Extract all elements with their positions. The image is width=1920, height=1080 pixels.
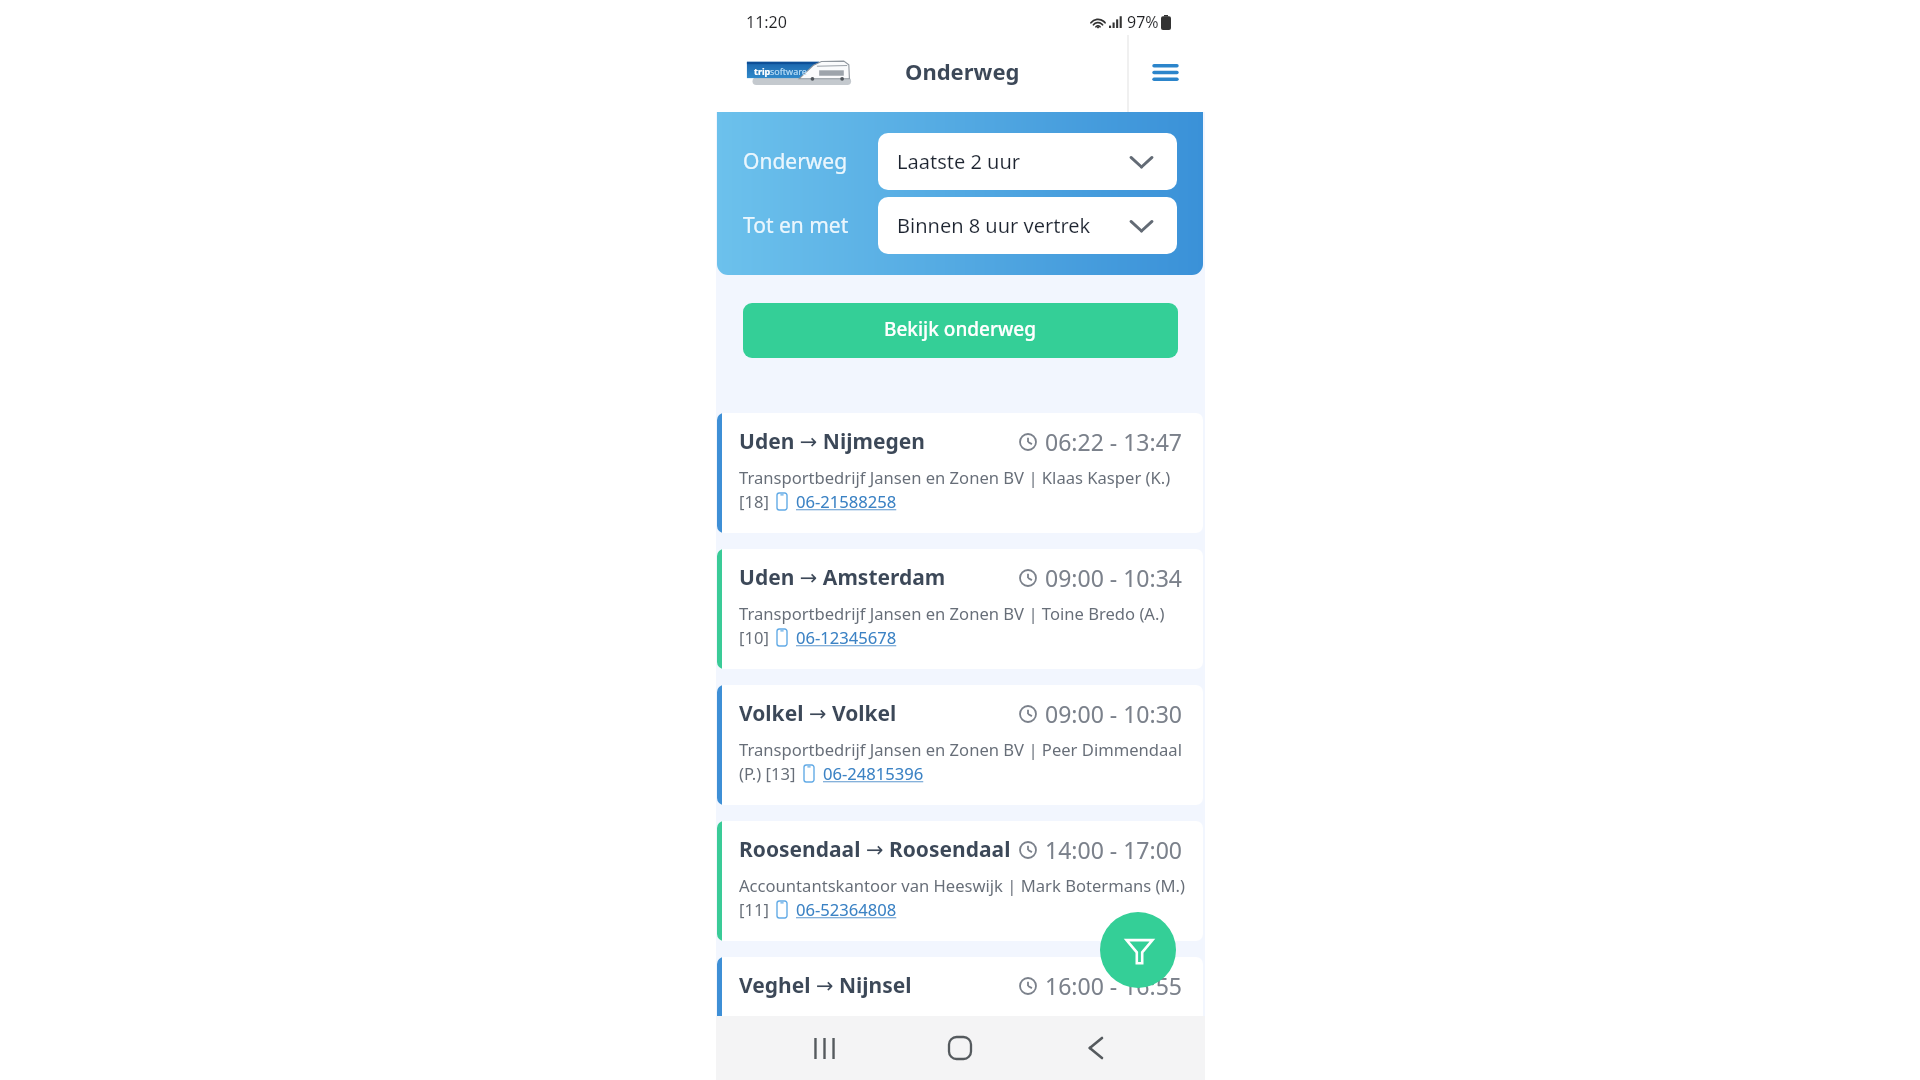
staticText: Veghel → Nijnsel [739,971,912,1000]
button[interactable]: Veghel → Nijnsel [717,957,1203,1077]
staticText: [10] [739,626,769,649]
button[interactable]: Roosendaal → Roosendaal [717,821,1203,941]
staticText: Onderweg [905,56,1020,86]
button[interactable]: Laatste 2 uur [878,133,1177,190]
staticText: software [770,65,807,77]
staticText: [11] [739,898,769,921]
staticText: Onderweg [743,147,848,176]
staticText: (P.) [13] [739,762,796,785]
staticText: Binnen 8 uur vertrek [897,212,1091,239]
staticText: Tot en met [743,211,849,240]
staticText: Transportbedrijf Jansen en Zonen BV | Pe… [739,738,1199,761]
staticText: 06-12345678 [796,626,897,649]
button[interactable]: Uden → Amsterdam [717,549,1203,669]
staticText: 06-24815396 [823,762,924,785]
staticText: 16:00 - 16:55 [1045,970,1182,1001]
staticText: Transportbedrijf Jansen en Zonen BV | To… [739,602,1199,625]
button[interactable]: Uden → Nijmegen [717,413,1203,533]
button[interactable]: Binnen 8 uur vertrek [878,197,1177,254]
staticText: Accountantskantoor van Heeswijk | Mark B… [739,874,1199,897]
staticText: Bekijk onderweg [884,316,1037,342]
staticText: Laatste 2 uur [897,148,1021,175]
button[interactable]: Bekijk onderweg [743,303,1178,358]
staticText: trip [754,65,771,77]
staticText: Transportbedrijf Jansen en Zonen BV | Kl… [739,466,1199,489]
staticText: 09:00 - 10:30 [1045,698,1182,729]
staticText: Roosendaal → Roosendaal [739,835,1011,864]
staticText: Uden → Nijmegen [739,427,925,456]
button[interactable]: Home [936,1024,984,1072]
staticText: 06-21588258 [796,490,897,513]
staticText: [18] [739,490,769,513]
staticText: 14:00 - 17:00 [1045,834,1182,865]
button[interactable]: 06-12345678 [777,626,897,649]
staticText: Volkel → Volkel [739,699,897,728]
button[interactable]: 06-21588258 [777,490,897,513]
button[interactable]: Volkel → Volkel [717,685,1203,805]
staticText: Uden → Amsterdam [739,563,946,592]
button[interactable]: Menu [1143,50,1187,94]
staticText: 09:00 - 10:34 [1045,562,1182,593]
button[interactable]: Back [1071,1024,1119,1072]
button[interactable]: 06-52364808 [777,898,897,921]
button[interactable]: Recents [800,1024,848,1072]
button[interactable]: Filter [1100,912,1176,988]
staticText: 11:20 [746,11,787,33]
button[interactable]: 06-24815396 [804,762,924,785]
staticText: 97% [1127,11,1159,33]
staticText: 06-52364808 [796,898,897,921]
staticText: 06:22 - 13:47 [1045,426,1182,457]
